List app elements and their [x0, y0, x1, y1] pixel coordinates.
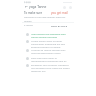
- staticText: Welcome to the new smarter inbox for mob…: [24, 16, 72, 22]
- staticText: ←: [25, 5, 28, 9]
- staticText: Yoga retreat this weekend with Tanne Sun…: [31, 32, 72, 38]
- button[interactable]: Excepteur sint occaecat cupidatat non pr…: [26, 63, 72, 72]
- staticText: To make sure: [24, 11, 43, 15]
- button[interactable]: Yoga retreat this weekend with Tanne Sun…: [26, 32, 72, 38]
- button[interactable]: Lorem ipsum dolor sit amet consectetur a…: [26, 39, 72, 48]
- staticText: ▮ ●●●: [24, 1, 31, 4]
- staticText: 3 results: [24, 24, 33, 27]
- button[interactable]: Search: [61, 4, 67, 10]
- staticText: Duis aute irure dolor in reprehenderit v…: [31, 56, 72, 62]
- button[interactable]: Ut enim ad minim veniam quis nostrud exe…: [26, 48, 72, 54]
- button[interactable]: Duis aute irure dolor in reprehenderit v…: [26, 56, 72, 62]
- staticText: Lorem ipsum dolor sit amet consectetur a…: [31, 39, 72, 48]
- button[interactable]: More options: [67, 4, 73, 10]
- staticText: Excepteur sint occaecat cupidatat non pr…: [31, 63, 72, 72]
- staticText: SORT BY DATE: [51, 24, 68, 27]
- staticText: yoga Tanne: [29, 5, 47, 9]
- button[interactable]: Back: [23, 4, 29, 10]
- staticText: Ut enim ad minim veniam quis nostrud exe…: [31, 48, 72, 54]
- staticText: you get mail: [51, 11, 68, 15]
